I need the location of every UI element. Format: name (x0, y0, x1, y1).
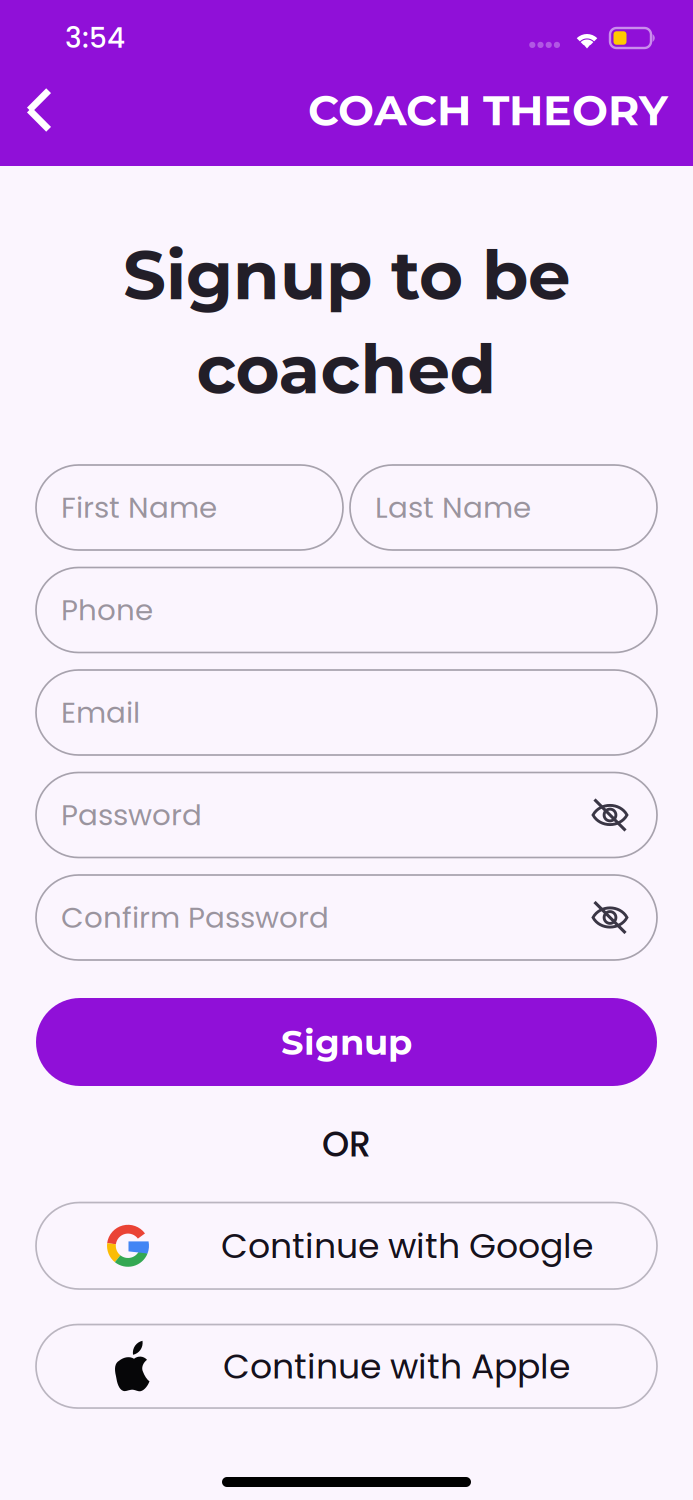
staticText: Confirm Password (61, 897, 329, 938)
staticText: Phone (61, 589, 153, 631)
staticText: Signup to be (123, 234, 570, 316)
staticText: Continue with Apple (223, 1342, 570, 1390)
button[interactable]: Back (8, 82, 70, 138)
staticText: Password (61, 794, 202, 836)
staticText: Last Name (375, 487, 531, 528)
button[interactable]: Signup (36, 998, 657, 1086)
staticText: Signup (281, 1020, 412, 1064)
staticText: First Name (61, 487, 217, 528)
staticText: Continue with Google (221, 1221, 593, 1270)
button[interactable]: Continue with Google (36, 1202, 657, 1289)
staticText: OR (322, 1120, 371, 1168)
staticText: coached (196, 328, 496, 410)
staticText: COACH THEORY (308, 84, 668, 136)
staticText: 3:54 (65, 18, 125, 58)
button[interactable]: Continue with Apple (36, 1324, 657, 1408)
staticText: Email (61, 692, 140, 733)
